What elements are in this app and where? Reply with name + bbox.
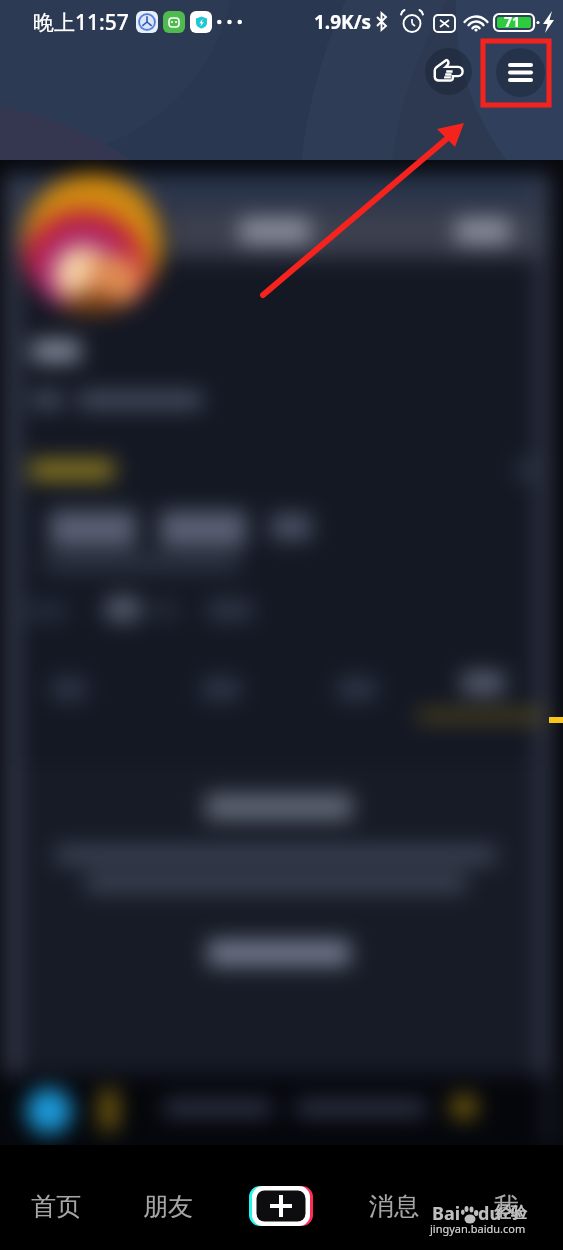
staticText: Bai [432, 1201, 461, 1226]
staticText: du [478, 1201, 502, 1226]
staticText: 1.9K/s [314, 9, 372, 35]
staticText: 消息 [369, 1191, 419, 1222]
staticText: 朋友 [143, 1191, 193, 1222]
button[interactable]: 我 [450, 1182, 563, 1230]
staticText: 晚上11:57 [33, 8, 129, 37]
button[interactable]: 消息 [337, 1182, 450, 1230]
button[interactable]: 朋友 [112, 1182, 224, 1230]
button[interactable]: Create new post [249, 1186, 313, 1226]
staticText: 首页 [31, 1191, 81, 1222]
staticText: 经验 [495, 1203, 527, 1223]
staticText: 我 [494, 1191, 519, 1222]
button[interactable]: Pointer hand [425, 48, 472, 95]
staticText: 71 [504, 12, 521, 31]
button[interactable]: Menu [496, 48, 545, 97]
button[interactable]: 首页 [0, 1182, 112, 1230]
staticText: jingyan.baidu.com [430, 1221, 526, 1236]
